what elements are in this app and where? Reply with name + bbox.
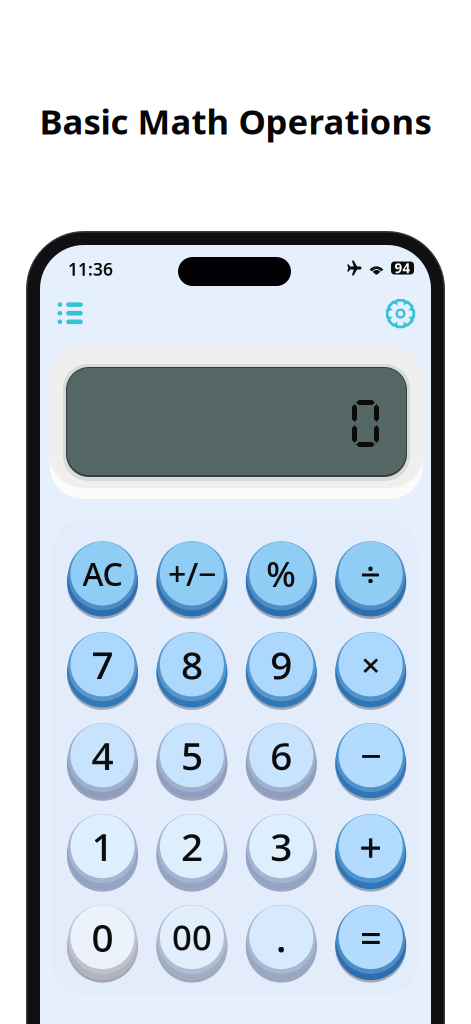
button[interactable]: +: [339, 814, 403, 887]
staticText: =: [360, 911, 382, 963]
button[interactable]: 1: [70, 814, 134, 887]
staticText: +/−: [168, 552, 216, 595]
button[interactable]: +/−: [160, 541, 224, 614]
staticText: .: [276, 910, 287, 964]
button[interactable]: 0: [70, 905, 134, 978]
staticText: 3: [270, 820, 292, 872]
staticText: 6: [270, 730, 292, 781]
staticText: 4: [91, 730, 113, 781]
button[interactable]: =: [339, 905, 403, 978]
staticText: 94: [394, 259, 410, 277]
button[interactable]: ÷: [339, 541, 403, 614]
staticText: 2: [181, 820, 203, 872]
button[interactable]: %: [249, 541, 313, 614]
button[interactable]: 00: [160, 905, 224, 978]
staticText: +: [359, 820, 382, 873]
staticText: 11:36: [68, 257, 113, 280]
staticText: ×: [361, 642, 380, 687]
button[interactable]: 7: [70, 632, 134, 705]
button[interactable]: 6: [249, 723, 313, 796]
staticText: 9: [270, 639, 292, 690]
staticText: %: [266, 550, 296, 596]
button[interactable]: 2: [160, 814, 224, 887]
staticText: AC: [82, 552, 122, 595]
button[interactable]: 3: [249, 814, 313, 887]
button[interactable]: 4: [70, 723, 134, 796]
button[interactable]: History: [48, 292, 92, 334]
staticText: 8: [181, 639, 203, 690]
button[interactable]: AC: [70, 541, 134, 614]
button[interactable]: 5: [160, 723, 224, 796]
staticText: 5: [181, 730, 203, 781]
staticText: ÷: [360, 550, 381, 597]
button[interactable]: 9: [249, 632, 313, 705]
button[interactable]: ×: [339, 632, 403, 705]
staticText: Basic Math Operations: [39, 98, 431, 144]
button[interactable]: −: [339, 723, 403, 796]
staticText: 7: [91, 639, 113, 690]
button[interactable]: Settings: [378, 293, 422, 335]
staticText: 0: [91, 911, 113, 963]
staticText: 00: [172, 914, 212, 960]
button[interactable]: 8: [160, 632, 224, 705]
button[interactable]: .: [249, 905, 313, 978]
staticText: −: [360, 730, 381, 780]
staticText: 1: [91, 820, 113, 872]
